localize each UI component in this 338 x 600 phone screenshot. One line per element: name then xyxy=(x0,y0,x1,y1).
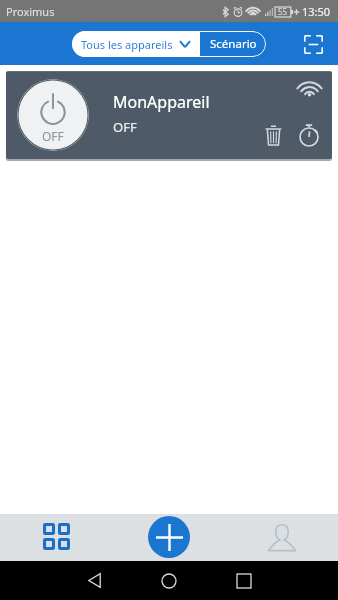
button[interactable]: Profile xyxy=(225,514,338,561)
staticText: Proximus xyxy=(6,4,55,19)
button[interactable]: Home xyxy=(153,565,184,596)
button[interactable]: Power toggle, OFF xyxy=(17,79,89,151)
staticText: MonAppareil xyxy=(113,91,210,113)
button[interactable]: Delete xyxy=(260,122,286,148)
button[interactable]: Tous les appareils xyxy=(72,31,200,57)
button[interactable]: Recents xyxy=(228,565,259,596)
staticText: Scénario xyxy=(210,36,257,52)
button[interactable]: Back xyxy=(79,565,110,596)
staticText: OFF xyxy=(42,128,64,144)
button[interactable]: Scan QR code xyxy=(299,30,327,58)
button[interactable]: Power toggle, OFF xyxy=(6,71,332,159)
button[interactable]: Wi-Fi connected xyxy=(296,76,322,102)
staticText: 13:50 xyxy=(302,4,331,19)
staticText: Tous les appareils xyxy=(81,37,173,52)
button[interactable]: Timer xyxy=(296,121,322,147)
button[interactable]: Devices xyxy=(0,514,112,561)
staticText: 55 xyxy=(278,6,288,17)
button[interactable]: Scénario xyxy=(200,31,266,57)
button[interactable]: Add device xyxy=(148,516,190,558)
staticText: OFF xyxy=(113,118,137,136)
